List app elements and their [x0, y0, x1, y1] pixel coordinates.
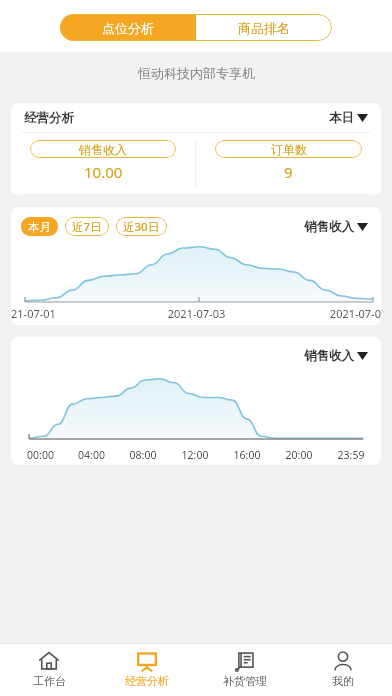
button[interactable]: 销售收入	[11, 133, 195, 194]
staticText: 00:00	[15, 448, 66, 462]
button[interactable]: 近7日	[65, 217, 109, 236]
staticText: 16:00	[221, 448, 273, 462]
button[interactable]: 商品排名	[196, 14, 332, 41]
button[interactable]: 我的	[294, 644, 392, 696]
staticText: 近30日	[123, 219, 160, 235]
staticText: 9	[284, 162, 293, 182]
staticText: 销售收入	[304, 348, 354, 364]
button[interactable]: 工作台	[0, 644, 98, 696]
button[interactable]: 订单数	[196, 133, 381, 194]
button[interactable]: 本日	[329, 110, 368, 126]
staticText: 10.00	[84, 162, 123, 182]
button[interactable]: 本月	[21, 217, 58, 236]
staticText: 20:00	[273, 448, 325, 462]
staticText: 经营分析	[24, 110, 74, 126]
staticText: 本日	[329, 110, 354, 126]
staticText: 销售收入	[304, 219, 354, 235]
button[interactable]: 点位分析	[60, 14, 196, 41]
staticText: 近7日	[72, 219, 102, 235]
staticText: 12:00	[169, 448, 221, 462]
staticText: 补货管理	[223, 674, 267, 688]
button[interactable]: 补货管理	[196, 644, 294, 696]
button[interactable]: 销售收入	[304, 348, 368, 364]
button[interactable]: 经营分析	[98, 644, 196, 696]
staticText: 恒动科技内部专享机	[138, 65, 255, 81]
button[interactable]: 销售收入	[304, 219, 368, 235]
staticText: 04:00	[66, 448, 117, 462]
staticText: 08:00	[117, 448, 169, 462]
staticText: 商品排名	[238, 20, 290, 36]
staticText: 点位分析	[102, 20, 154, 36]
staticText: 21-07-01	[11, 306, 135, 321]
staticText: 2021-07-0	[258, 306, 381, 321]
staticText: 我的	[332, 674, 354, 688]
staticText: 2021-07-03	[135, 306, 258, 321]
button[interactable]: 近30日	[116, 217, 167, 236]
staticText: 经营分析	[125, 674, 169, 688]
staticText: 订单数	[271, 142, 307, 157]
staticText: 23:59	[325, 448, 377, 462]
staticText: 销售收入	[79, 142, 127, 157]
staticText: 工作台	[33, 674, 66, 688]
staticText: 本月	[28, 220, 51, 234]
